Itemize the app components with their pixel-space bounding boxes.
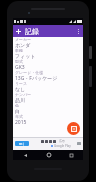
staticText: 色 <box>15 103 19 108</box>
button[interactable]: Add <box>13 26 23 36</box>
staticText: グレード・仕様 <box>15 70 44 75</box>
staticText: メーカー <box>15 37 32 42</box>
staticText: リース <box>15 81 28 86</box>
button[interactable]: ナンバー <box>15 92 81 103</box>
staticText: 記録 <box>25 27 39 36</box>
button[interactable]: Recent apps <box>60 150 83 160</box>
button[interactable]: Home <box>37 150 60 160</box>
staticText: 車種 <box>15 48 23 53</box>
staticText: 型式 <box>15 59 23 64</box>
button[interactable]: 型式 <box>15 59 81 70</box>
button[interactable]: グレード・仕様 <box>15 70 81 81</box>
staticText: GK3 <box>15 64 25 70</box>
button[interactable]: Back <box>13 150 37 160</box>
button[interactable]: 色 <box>15 103 81 114</box>
staticText: 品川 <box>15 97 25 103</box>
staticText: ホンダ <box>15 42 31 48</box>
staticText: 2015 <box>15 119 27 125</box>
button[interactable]: 車種 <box>15 48 81 59</box>
button[interactable]: メーカー <box>15 37 81 48</box>
staticText: Google Play <box>54 144 71 148</box>
staticText: 広告 <box>59 139 65 143</box>
staticText: なし <box>15 86 26 92</box>
button[interactable]: 年式 <box>15 114 81 125</box>
button[interactable]: Save record <box>67 122 80 135</box>
staticText: 白 <box>15 108 20 114</box>
staticText: ナンバー <box>15 92 32 97</box>
staticText: 13G・Fパッケージ <box>15 75 58 81</box>
staticText: 開く <box>19 142 26 146</box>
staticText: フィット <box>15 53 36 59</box>
button[interactable]: Advertisement <box>13 137 83 150</box>
staticText: 年式 <box>15 114 23 119</box>
button[interactable]: More options <box>73 26 83 36</box>
button[interactable]: リース <box>15 81 81 92</box>
